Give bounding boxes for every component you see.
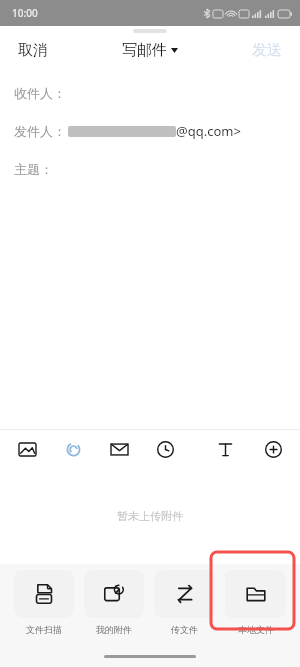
button[interactable]: 收件人：: [0, 74, 300, 112]
button[interactable]: 文件扫描: [14, 570, 74, 635]
staticText: 传文件: [171, 624, 198, 635]
staticText: 暂未上传附件: [117, 509, 183, 523]
button[interactable]: Schedule send: [152, 436, 178, 462]
button[interactable]: Insert link: [60, 436, 86, 462]
button[interactable]: Insert mail: [106, 436, 132, 462]
staticText: 发件人：: [14, 123, 66, 139]
button[interactable]: More: [260, 436, 286, 462]
staticText: 收件人：: [14, 85, 66, 101]
button[interactable]: 发件人：: [0, 112, 300, 150]
staticText: 写邮件: [122, 41, 167, 60]
button[interactable]: 发送: [248, 35, 286, 66]
staticText: 文件扫描: [26, 624, 62, 635]
staticText: 我的附件: [96, 624, 132, 635]
button[interactable]: 传文件: [154, 570, 215, 635]
button[interactable]: 写邮件: [116, 35, 184, 66]
staticText: 取消: [18, 41, 48, 60]
button[interactable]: 本地文件: [225, 570, 286, 635]
staticText: @qq.com>: [176, 122, 241, 140]
button[interactable]: 主题：: [0, 150, 300, 188]
button[interactable]: Text format: [212, 436, 238, 462]
staticText: 发送: [252, 41, 282, 60]
button[interactable]: Insert image: [14, 436, 40, 462]
staticText: 本地文件: [238, 624, 274, 635]
button[interactable]: 取消: [14, 35, 52, 66]
staticText: 主题：: [14, 161, 53, 177]
button[interactable]: 我的附件: [84, 570, 144, 635]
staticText: 10:00: [12, 6, 38, 20]
